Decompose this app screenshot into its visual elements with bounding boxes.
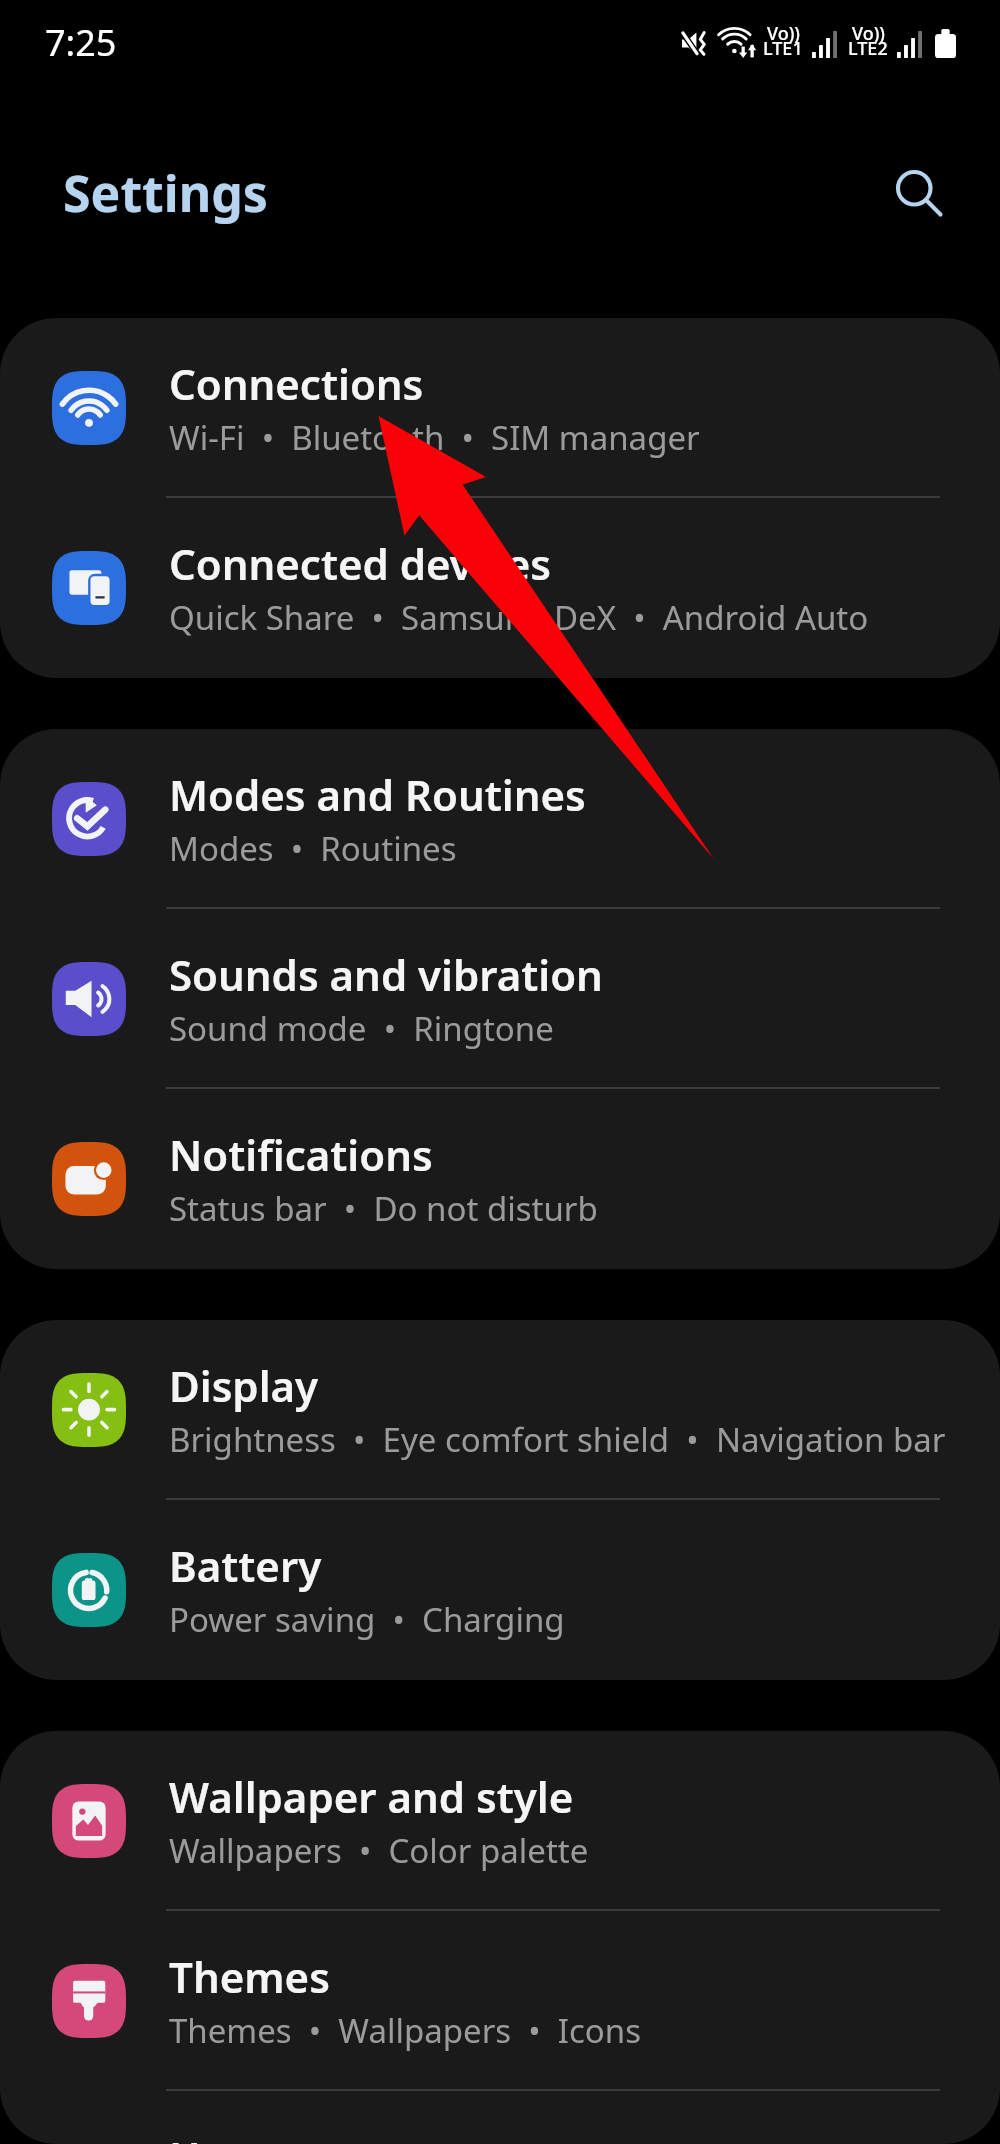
staticText: Status bar • Do not disturb [169,1186,598,1231]
button[interactable]: Home screen [0,2091,1000,2144]
button[interactable]: Wallpaper and style [0,1731,1000,1911]
staticText: Brightness • Eye comfort shield • Naviga… [169,1417,946,1462]
button[interactable]: Themes [0,1911,1000,2091]
staticText: Display [169,1357,319,1414]
button[interactable]: Sounds and vibration [0,909,1000,1089]
button[interactable]: Notifications [0,1089,1000,1269]
staticText: Wallpapers • Color palette [169,1828,589,1873]
staticText: Themes • Wallpapers • Icons [169,2008,641,2053]
staticText: 7:25 [45,18,117,67]
staticText: Battery [169,1537,322,1594]
button[interactable]: Connections [0,318,1000,498]
staticText: Power saving • Charging [169,1597,565,1642]
staticText: Sounds and vibration [169,946,603,1003]
staticText: Sound mode • Ringtone [169,1006,554,1051]
staticText: Modes and Routines [169,766,586,823]
staticText: Vo)) [852,21,885,46]
staticText: Themes [169,1948,330,2005]
staticText: Vo)) [767,21,800,46]
staticText: Notifications [169,1126,433,1183]
staticText: Connections [169,355,424,412]
button[interactable]: Battery [0,1500,1000,1680]
staticText: Connected devices [169,535,552,592]
button[interactable]: Search [884,158,954,228]
button[interactable]: Connected devices [0,498,1000,678]
button[interactable]: Display [0,1320,1000,1500]
staticText: Home screen [169,2128,438,2144]
staticText: LTE2 [848,36,888,61]
staticText: Quick Share • Samsung DeX • Android Auto [169,595,869,640]
staticText: Modes • Routines [169,826,457,871]
staticText: Wallpaper and style [169,1768,574,1825]
staticText: LTE1 [763,36,803,61]
staticText: Settings [63,159,268,227]
staticText: Wi‑Fi • Bluetooth • SIM manager [169,415,700,460]
button[interactable]: Modes and Routines [0,729,1000,909]
